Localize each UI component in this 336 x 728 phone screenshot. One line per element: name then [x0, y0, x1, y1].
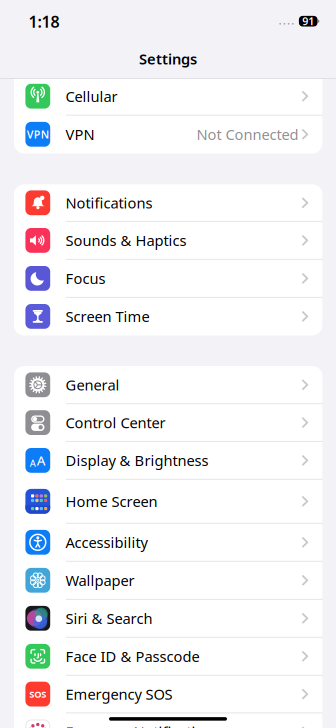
button[interactable]: SOS [14, 675, 322, 713]
staticText: Screen Time [65, 307, 149, 326]
button[interactable]: General [14, 366, 322, 404]
staticText: A [30, 457, 36, 469]
button[interactable]: A [14, 441, 322, 479]
button[interactable]: VPN [14, 115, 322, 153]
button[interactable]: Accessibility [14, 523, 322, 561]
button[interactable]: Sounds & Haptics [14, 221, 322, 259]
staticText: Wallpaper [65, 571, 134, 590]
staticText: Face ID & Passcode [65, 647, 199, 666]
staticText: Accessibility [65, 533, 147, 552]
staticText: SOS [29, 688, 46, 700]
button[interactable]: Face ID & Passcode [14, 637, 322, 675]
button[interactable]: Notifications [14, 184, 322, 222]
staticText: Home Screen [65, 492, 157, 511]
staticText: Cellular [65, 86, 117, 106]
button[interactable]: Screen Time [14, 297, 322, 335]
staticText: Focus [65, 269, 105, 288]
staticText: Control Center [65, 413, 165, 432]
button[interactable]: Control Center [14, 404, 322, 442]
staticText: 91 [302, 14, 314, 28]
staticText: 1:18 [28, 11, 59, 32]
button[interactable]: Wallpaper [14, 561, 322, 599]
button[interactable]: Cellular [14, 77, 322, 115]
button[interactable]: Focus [14, 259, 322, 297]
staticText: Emergency SOS [65, 684, 172, 704]
staticText: Sounds & Haptics [65, 231, 186, 250]
button[interactable]: Siri & Search [14, 599, 322, 637]
staticText: Settings [139, 49, 197, 69]
staticText: Siri & Search [65, 609, 152, 628]
staticText: Display & Brightness [65, 451, 208, 470]
staticText: Exposure Notifications [65, 722, 220, 728]
staticText: General [65, 375, 119, 395]
button[interactable]: Exposure Notifications [14, 713, 322, 728]
staticText: VPN [27, 127, 49, 141]
button[interactable]: Home Screen [14, 479, 322, 523]
staticText: Notifications [65, 193, 152, 213]
staticText: A [37, 451, 46, 469]
staticText: VPN [65, 125, 94, 144]
staticText: Not Connected [196, 125, 298, 144]
